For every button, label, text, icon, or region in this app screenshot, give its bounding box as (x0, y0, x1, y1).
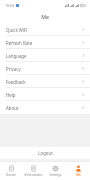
button[interactable]: Information (22, 161, 44, 180)
button[interactable]: Logout (0, 147, 90, 159)
staticText: Information (24, 173, 43, 177)
button[interactable]: Device (0, 161, 22, 180)
staticText: Privacy (6, 66, 82, 72)
staticText: Feedback (6, 79, 82, 85)
staticText: Device (6, 173, 16, 177)
staticText: 10:04 (5, 3, 15, 8)
staticText: Logout (38, 150, 53, 156)
staticText: Refresh Rate (6, 40, 82, 46)
button[interactable]: Me (67, 161, 90, 180)
button[interactable]: About (0, 101, 90, 114)
button[interactable]: Feedback (0, 75, 90, 88)
button[interactable]: Refresh Rate (0, 36, 90, 49)
staticText: Help (6, 92, 82, 98)
staticText: Language (6, 53, 82, 59)
staticText: Me (41, 13, 49, 20)
staticText: Quick WiFi (6, 27, 82, 33)
button[interactable]: Help (0, 88, 90, 101)
button[interactable]: Quick WiFi (0, 23, 90, 36)
staticText: About (6, 105, 82, 111)
staticText: Me (76, 173, 81, 177)
staticText: Settings (49, 173, 62, 177)
button[interactable]: Settings (44, 161, 67, 180)
button[interactable]: Privacy (0, 62, 90, 75)
button[interactable]: Language (0, 49, 90, 62)
